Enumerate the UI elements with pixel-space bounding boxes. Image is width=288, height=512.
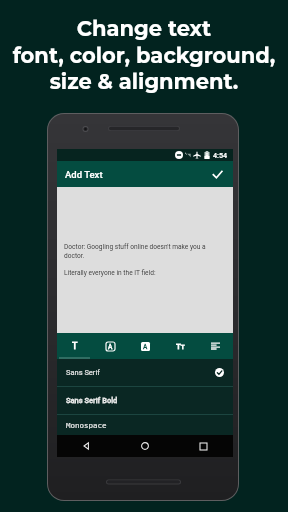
- button[interactable]: Background color: [128, 333, 163, 359]
- staticText: Doctor: Googling stuff online doesn't ma…: [64, 243, 227, 260]
- button[interactable]: Monospace: [57, 415, 233, 435]
- staticText: Change text font, color, background, siz…: [0, 16, 288, 94]
- button[interactable]: Text: [57, 333, 93, 359]
- button[interactable]: Text color: [93, 333, 128, 359]
- button[interactable]: Recents: [174, 435, 233, 457]
- staticText: Tт: [176, 342, 185, 351]
- button[interactable]: Text size: [163, 333, 198, 359]
- button[interactable]: Home: [115, 435, 174, 457]
- button[interactable]: Back: [57, 435, 115, 457]
- staticText: 4:54: [213, 151, 228, 159]
- staticText: Monospace: [66, 421, 107, 430]
- staticText: Add Text: [65, 169, 103, 180]
- staticText: Sans Serif Bold: [66, 396, 118, 405]
- staticText: T: [72, 341, 78, 352]
- button[interactable]: Alignment: [198, 333, 233, 359]
- button[interactable]: Sans Serif: [57, 359, 233, 386]
- button[interactable]: Sans Serif Bold: [57, 387, 233, 414]
- staticText: Sans Serif: [66, 368, 100, 377]
- staticText: Literally everyone in the IT field:: [64, 269, 156, 277]
- staticText: A: [143, 343, 148, 351]
- button[interactable]: Done: [205, 162, 229, 186]
- staticText: A: [108, 343, 113, 351]
